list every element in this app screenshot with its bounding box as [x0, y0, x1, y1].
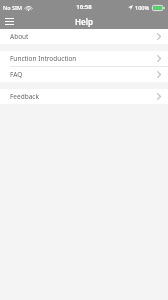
button[interactable]: Open navigation menu	[0, 14, 18, 29]
button[interactable]: Function Introduction	[0, 51, 168, 66]
button[interactable]: About	[0, 29, 168, 44]
staticText: Help	[75, 16, 93, 27]
staticText: Function Introduction	[10, 54, 77, 63]
staticText: Feedback	[10, 92, 39, 101]
button[interactable]: FAQ	[0, 67, 168, 82]
staticText: About	[10, 32, 29, 41]
staticText: 16:58	[76, 3, 92, 11]
staticText: 100%	[135, 4, 150, 11]
staticText: FAQ	[10, 70, 23, 79]
staticText: No SIM	[3, 4, 23, 11]
button[interactable]: Feedback	[0, 89, 168, 104]
